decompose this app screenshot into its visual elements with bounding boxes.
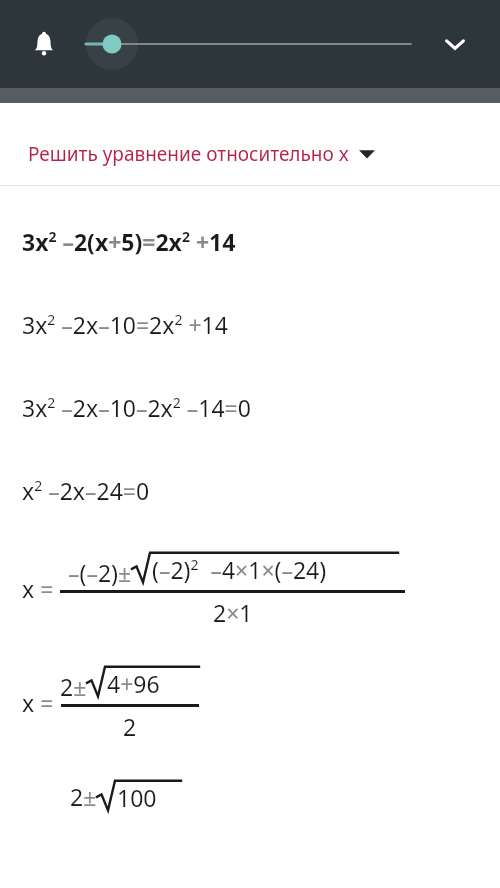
staticText: (–2)2 –4×1×(–24) bbox=[152, 554, 327, 585]
staticText: x = bbox=[22, 573, 60, 604]
button[interactable]: Notifications bbox=[22, 22, 66, 66]
staticText: 4+96 bbox=[107, 668, 160, 699]
button[interactable]: Volume slider bbox=[86, 18, 426, 70]
staticText: 3x2 –2x–10–2x2 –14=0 bbox=[22, 392, 251, 423]
staticText: 2×1 bbox=[213, 597, 253, 628]
staticText: 100 bbox=[117, 782, 157, 813]
staticText: –(–2)± bbox=[68, 557, 132, 588]
button[interactable]: Решить уравнение относительно x bbox=[28, 141, 480, 167]
staticText: 2± bbox=[60, 671, 87, 702]
staticText: 2 bbox=[123, 711, 137, 742]
staticText: 3x2 –2x–10=2x2 +14 bbox=[22, 309, 228, 340]
staticText: x2 –2x–24=0 bbox=[22, 475, 150, 506]
staticText: Решить уравнение относительно x bbox=[28, 141, 349, 167]
staticText: 2± bbox=[70, 781, 97, 812]
staticText: 3x2 –2(x+5)=2x2 +14 bbox=[22, 226, 236, 257]
staticText: x = bbox=[22, 687, 60, 718]
button[interactable]: Expand bbox=[433, 22, 477, 66]
